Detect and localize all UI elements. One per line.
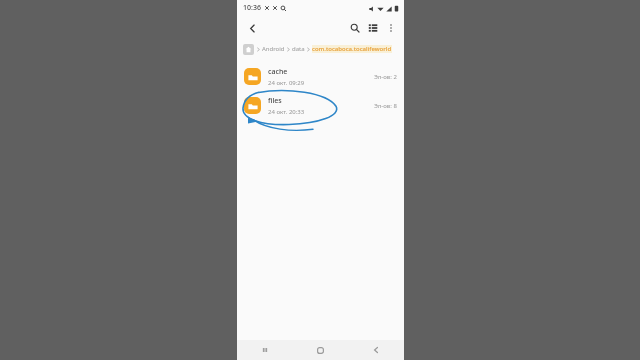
staticText: Эл-ов: 8 <box>374 102 397 110</box>
staticText: cache <box>268 67 288 77</box>
button[interactable]: View as list <box>364 19 382 37</box>
button[interactable]: data <box>292 45 305 53</box>
button[interactable]: files <box>237 91 404 120</box>
button[interactable]: Search <box>346 19 364 37</box>
staticText: 24 окт. 20:33 <box>268 108 305 116</box>
staticText: 24 окт. 09:29 <box>268 79 305 87</box>
staticText: com.tocaboca.tocalifeworld <box>312 45 392 53</box>
button[interactable]: Internal storage <box>243 44 254 55</box>
button[interactable]: Home <box>292 340 348 360</box>
button[interactable]: More options <box>382 19 400 37</box>
staticText: data <box>292 45 305 53</box>
button[interactable]: cache <box>237 62 404 91</box>
staticText: files <box>268 96 282 106</box>
button[interactable]: Recent apps <box>237 340 292 360</box>
staticText: Android <box>262 45 285 53</box>
button[interactable]: com.tocaboca.tocalifeworld <box>312 45 392 53</box>
staticText: 10:36 <box>243 3 261 13</box>
staticText: Эл-ов: 2 <box>374 73 397 81</box>
button[interactable]: Android <box>262 45 285 53</box>
button[interactable]: Back <box>348 340 404 360</box>
button[interactable]: Back <box>243 19 261 37</box>
